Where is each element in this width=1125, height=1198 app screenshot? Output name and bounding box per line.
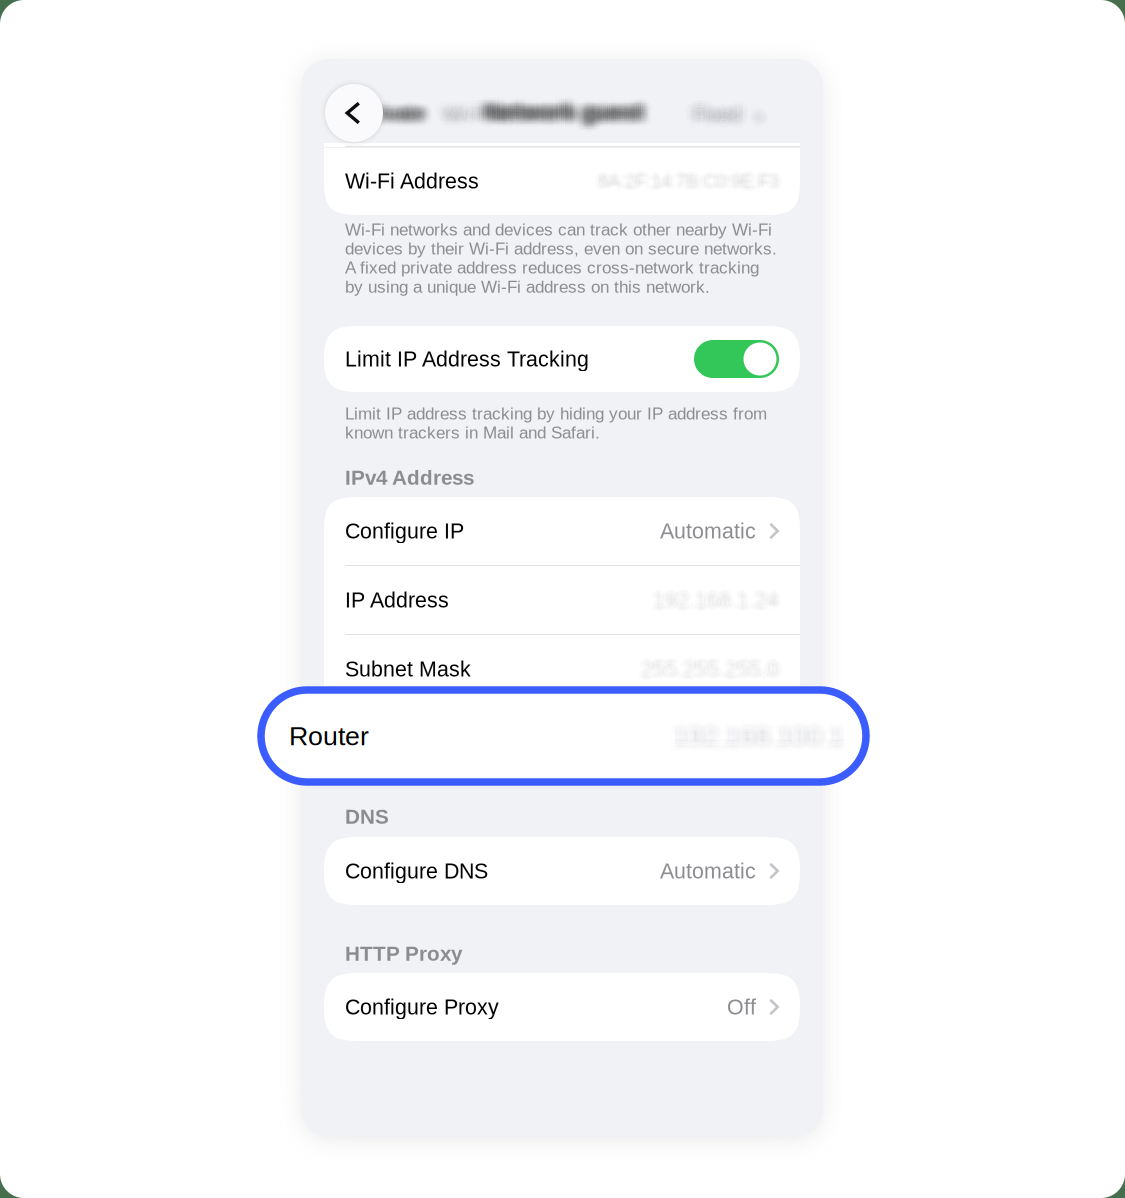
staticText: 255.255.255.0 <box>636 654 774 678</box>
button[interactable]: IP Address <box>324 566 800 634</box>
staticText: Wi-Fi <box>440 100 486 123</box>
staticText: › <box>755 110 763 135</box>
staticText: Wi-Fi <box>446 103 492 125</box>
staticText: Wi-Fi <box>450 103 496 125</box>
staticText: Private <box>370 107 432 130</box>
staticText: Private <box>361 107 423 130</box>
staticText: 255.255.255.0 <box>648 660 786 684</box>
staticText: 192.168.1.1 <box>662 722 776 746</box>
button[interactable]: Router <box>324 704 800 772</box>
staticText: 255.255.255.0 <box>648 655 786 679</box>
staticText: 192.168.100.1 <box>682 718 853 748</box>
staticText: 255.255.255.0 <box>633 657 771 681</box>
staticText: Private <box>365 99 427 122</box>
staticText: Wi-Fi <box>448 103 494 125</box>
staticText: 192.168.100.1 <box>677 717 848 746</box>
button[interactable]: Back <box>321 80 387 146</box>
button[interactable]: Router <box>261 690 866 782</box>
staticText: Fixed <box>695 103 743 125</box>
staticText: 192.168.100.1 <box>682 721 853 751</box>
staticText: Network guest <box>485 103 644 129</box>
staticText: Private <box>368 98 430 120</box>
staticText: 192.168.100.1 <box>664 724 835 754</box>
staticText: 192.168.1.1 <box>662 726 776 750</box>
button[interactable]: Configure DNS <box>324 837 800 905</box>
staticText: 192.168.1.24 <box>650 589 776 613</box>
staticText: 192.168.1.1 <box>662 729 776 753</box>
staticText: Wi-Fi <box>438 103 484 125</box>
staticText: › <box>755 103 763 128</box>
staticText: Network guest <box>479 93 638 118</box>
staticText: 192.168.1.1 <box>660 722 774 746</box>
staticText: Network guest <box>483 95 642 120</box>
staticText: Fixed <box>688 107 736 129</box>
staticText: Network guest <box>479 99 638 124</box>
staticText: 192.168.100.1 <box>666 720 837 749</box>
staticText: Private <box>363 109 425 131</box>
staticText: › <box>752 99 760 125</box>
staticText: Wi-Fi <box>440 96 486 119</box>
staticText: Fixed <box>693 104 741 127</box>
staticText: Fixed <box>696 99 744 121</box>
button[interactable]: Configure IP <box>324 497 800 565</box>
staticText: › <box>752 101 760 126</box>
staticText: 192.168.1.24 <box>654 592 780 616</box>
staticText: 8A:2F:14:7B:C0:9E:F3 <box>603 169 784 190</box>
staticText: 192.168.100.1 <box>664 725 835 755</box>
staticText: 192.168.1.1 <box>664 722 778 746</box>
staticText: 192.168.100.1 <box>680 721 851 751</box>
staticText: 192.168.1.24 <box>658 586 784 610</box>
staticText: Network guest <box>481 92 640 117</box>
staticText: Automatic <box>660 519 756 543</box>
staticText: Private <box>358 105 420 127</box>
staticText: Fixed <box>695 99 743 121</box>
staticText: Network guest <box>485 96 644 121</box>
staticText: 8A:2F:14:7B:C0:9E:F3 <box>590 171 771 191</box>
staticText: 192.168.1.24 <box>650 593 776 617</box>
staticText: Fixed <box>686 99 734 121</box>
staticText: 255.255.255.0 <box>641 651 779 674</box>
staticText: Network guest <box>494 103 653 129</box>
staticText: Fixed <box>701 99 749 121</box>
staticText: 192.168.1.1 <box>665 727 779 751</box>
staticText: 8A:2F:14:7B:C0:9E:F3 <box>601 168 782 189</box>
staticText: 8A:2F:14:7B:C0:9E:F3 <box>599 173 780 194</box>
staticText: 255.255.255.0 <box>642 653 780 677</box>
staticText: 192.168.1.24 <box>652 583 778 607</box>
staticText: Private <box>363 103 425 126</box>
button[interactable]: Wi-Fi Address <box>324 147 800 215</box>
staticText: 192.168.100.1 <box>680 727 851 757</box>
staticText: 192.168.1.24 <box>657 592 783 616</box>
staticText: Network guest <box>481 105 640 130</box>
staticText: Fixed <box>695 102 743 124</box>
button[interactable]: Configure Proxy <box>324 973 800 1041</box>
staticText: 192.168.1.1 <box>665 731 779 755</box>
staticText: 192.168.1.24 <box>653 589 779 613</box>
staticText: 255.255.255.0 <box>646 653 784 677</box>
staticText: Private <box>366 97 428 119</box>
staticText: 192.168.100.1 <box>677 714 848 744</box>
staticText: 8A:2F:14:7B:C0:9E:F3 <box>603 166 784 187</box>
staticText: Fixed <box>690 107 738 129</box>
button[interactable]: Limit IP Address Tracking <box>324 326 800 392</box>
staticText: 8A:2F:14:7B:C0:9E:F3 <box>598 164 779 185</box>
staticText: 192.168.1.24 <box>658 587 784 611</box>
staticText: 8A:2F:14:7B:C0:9E:F3 <box>603 167 784 188</box>
staticText: 192.168.100.1 <box>666 715 837 745</box>
staticText: Network guest <box>485 90 644 115</box>
staticText: Wi-Fi <box>443 108 489 131</box>
staticText: 192.168.1.1 <box>661 731 775 755</box>
staticText: Fixed <box>688 110 736 132</box>
staticText: 255.255.255.0 <box>644 656 782 680</box>
button[interactable]: Subnet Mask <box>324 635 800 703</box>
staticText: 192.168.1.24 <box>656 591 782 615</box>
staticText: › <box>759 101 767 126</box>
staticText: Wi-Fi <box>441 108 487 131</box>
staticText: Wi-Fi <box>438 98 484 120</box>
staticText: 192.168.1.1 <box>668 730 782 754</box>
staticText: 8A:2F:14:7B:C0:9E:F3 <box>602 172 783 192</box>
staticText: 8A:2F:14:7B:C0:9E:F3 <box>594 175 775 196</box>
staticText: › <box>755 105 763 131</box>
staticText: 192.168.1.1 <box>662 728 776 752</box>
staticText: 8A:2F:14:7B:C0:9E:F3 <box>605 171 786 191</box>
